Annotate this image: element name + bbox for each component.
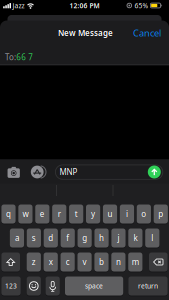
button[interactable]: To: 66 7 — [0, 48, 169, 64]
staticText: o — [141, 209, 146, 219]
button[interactable]: u — [103, 204, 117, 223]
button[interactable]: Delete — [149, 252, 168, 271]
staticText: w — [22, 209, 28, 219]
staticText: t — [75, 209, 78, 219]
staticText: c — [66, 257, 70, 267]
staticText: m — [132, 257, 139, 267]
staticText: i — [126, 209, 128, 219]
staticText: Cancel — [133, 27, 161, 39]
staticText: u — [107, 209, 112, 219]
button[interactable]: k — [128, 228, 142, 247]
button[interactable]: space — [65, 276, 123, 295]
staticText: r — [58, 209, 61, 219]
button[interactable]: a — [10, 228, 24, 247]
button[interactable]: l — [145, 228, 159, 247]
staticText: d — [48, 233, 53, 243]
button[interactable]: o — [137, 204, 151, 223]
button[interactable]: h — [94, 228, 109, 247]
button[interactable]: e — [35, 204, 49, 223]
staticText: New Message — [58, 28, 113, 38]
button[interactable]: Camera — [7, 166, 21, 180]
staticText: q — [6, 209, 11, 219]
staticText: To: — [5, 52, 16, 62]
staticText: v — [83, 257, 87, 267]
button[interactable]: q — [1, 204, 16, 223]
button[interactable]: y — [86, 204, 100, 223]
button[interactable]: f — [61, 228, 75, 247]
staticText: l — [151, 233, 153, 243]
staticText: j — [117, 233, 119, 243]
button[interactable]: iMessage apps — [29, 165, 45, 179]
button[interactable]: m — [128, 252, 142, 271]
staticText: f — [66, 233, 69, 243]
button[interactable]: z — [27, 252, 41, 271]
staticText: 65% — [134, 1, 148, 10]
staticText: h — [99, 233, 104, 243]
button[interactable]: p — [154, 204, 168, 223]
staticText: b — [99, 257, 104, 267]
button[interactable]: Dictation — [46, 276, 60, 295]
staticText: Jazz — [12, 1, 24, 10]
staticText: 66 7 — [16, 52, 33, 62]
button[interactable]: g — [77, 228, 92, 247]
button[interactable]: return — [128, 276, 168, 295]
button[interactable]: r — [52, 204, 66, 223]
button[interactable]: j — [111, 228, 126, 247]
staticText: y — [91, 209, 95, 219]
button[interactable]: c — [60, 252, 75, 271]
button[interactable]: Emoji — [27, 276, 41, 295]
staticText: x — [49, 257, 53, 267]
button[interactable]: w — [18, 204, 32, 223]
button[interactable]: Cancel — [132, 26, 162, 40]
button[interactable]: n — [111, 252, 125, 271]
button[interactable]: s — [27, 228, 41, 247]
staticText: MNP — [59, 167, 77, 177]
button[interactable]: Shift — [1, 252, 20, 271]
staticText: a — [15, 233, 19, 243]
button[interactable]: i — [120, 204, 134, 223]
staticText: z — [32, 257, 36, 267]
button[interactable]: Send — [148, 165, 161, 178]
staticText: n — [116, 257, 121, 267]
staticText: 123 — [5, 282, 17, 290]
button[interactable]: Message field: MNP — [55, 165, 163, 179]
button[interactable]: x — [44, 252, 58, 271]
staticText: s — [32, 233, 36, 243]
staticText: e — [40, 209, 45, 219]
button[interactable]: v — [77, 252, 92, 271]
staticText: k — [133, 233, 137, 243]
button[interactable]: 123 — [1, 276, 21, 295]
staticText: return — [138, 282, 158, 290]
button[interactable]: d — [44, 228, 58, 247]
button[interactable]: t — [69, 204, 83, 223]
staticText: g — [82, 233, 87, 243]
staticText: 12:06 PM — [69, 1, 99, 10]
button[interactable]: b — [94, 252, 109, 271]
staticText: space — [85, 282, 103, 290]
staticText: p — [158, 209, 163, 219]
